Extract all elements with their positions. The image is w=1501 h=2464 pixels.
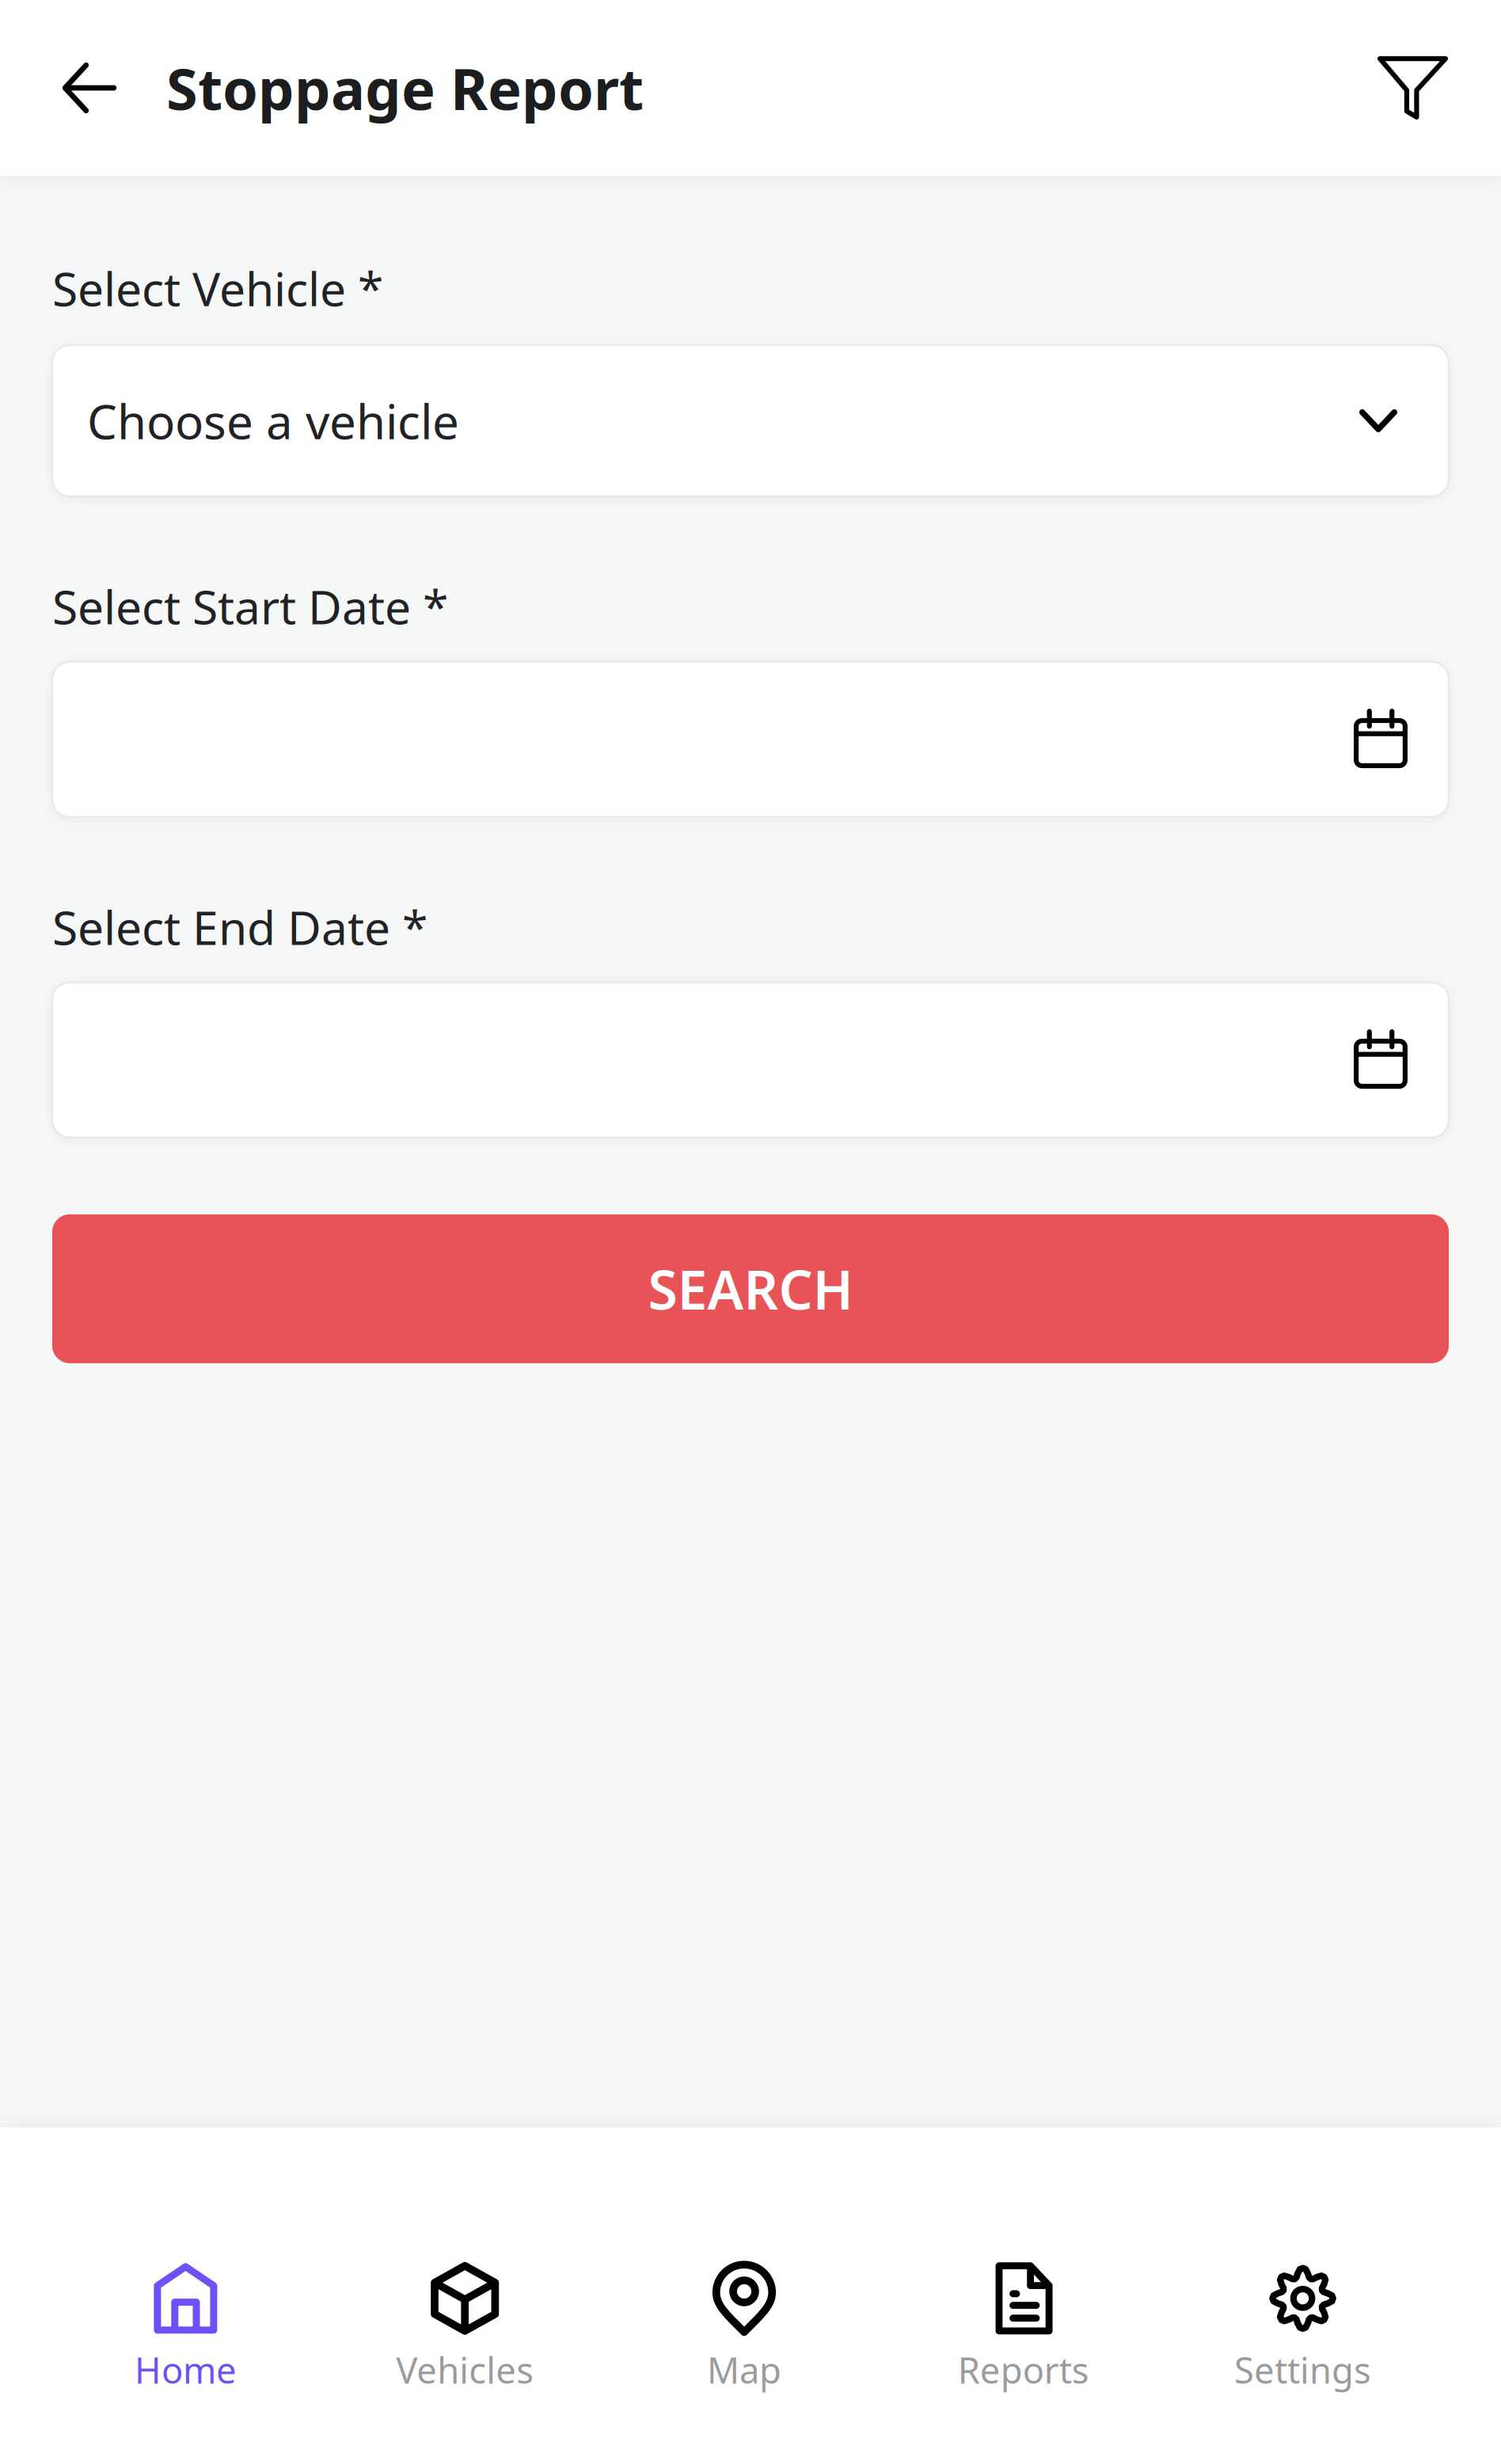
staticText: SEARCH (648, 1253, 853, 1325)
staticText: Vehicles (396, 2346, 534, 2394)
button[interactable]: Map (605, 2260, 884, 2394)
staticText: Settings (1234, 2346, 1371, 2394)
button[interactable]: Select End Date (52, 982, 1449, 1138)
button[interactable]: Home (46, 2260, 325, 2394)
button[interactable]: Select Start Date (52, 662, 1449, 817)
staticText: Choose a vehicle (87, 389, 459, 452)
staticText: Select End Date * (52, 896, 427, 958)
button[interactable]: Choose a vehicle (52, 345, 1449, 496)
staticText: Select Vehicle * (52, 257, 383, 319)
staticText: Select Start Date * (52, 576, 448, 637)
button[interactable]: Filter (1375, 50, 1450, 125)
button[interactable]: Settings (1163, 2260, 1442, 2394)
button[interactable]: Reports (884, 2260, 1163, 2394)
button[interactable]: SEARCH (52, 1214, 1449, 1363)
staticText: Reports (958, 2346, 1089, 2394)
button[interactable]: Vehicles (325, 2260, 605, 2394)
button[interactable]: Back (55, 54, 123, 122)
staticText: Map (707, 2346, 781, 2394)
staticText: Stoppage Report (166, 50, 644, 126)
staticText: Home (135, 2346, 237, 2394)
